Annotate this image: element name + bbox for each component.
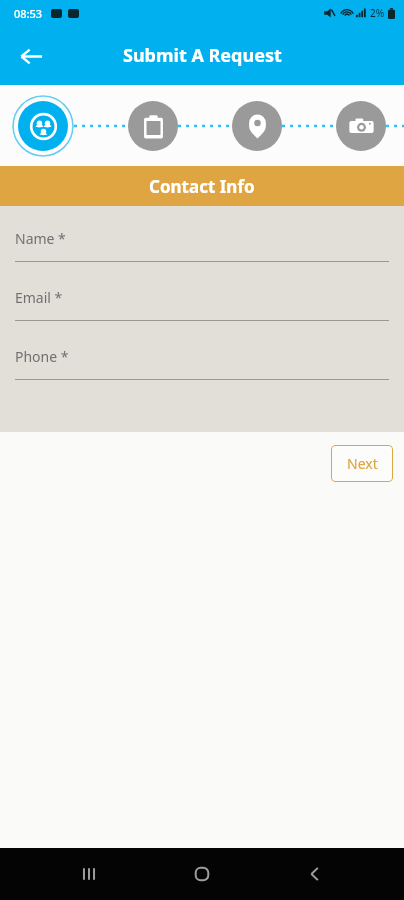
button[interactable]: Home <box>178 850 226 898</box>
staticText: Email * <box>15 288 63 307</box>
button[interactable]: Email * <box>0 288 404 321</box>
staticText: Next <box>347 454 378 473</box>
staticText: 2% <box>370 6 385 20</box>
button[interactable]: Name * <box>0 229 404 262</box>
staticText: Phone * <box>15 347 69 366</box>
button[interactable]: Back <box>10 35 52 77</box>
button[interactable]: Photo step <box>336 101 386 151</box>
staticText: 08:53 <box>14 6 43 21</box>
button[interactable]: Recent apps <box>65 850 113 898</box>
button[interactable]: Location step <box>232 101 282 151</box>
button[interactable]: Back <box>291 850 339 898</box>
button[interactable]: Contact info step <box>12 95 74 157</box>
button[interactable]: Next <box>331 445 393 482</box>
button[interactable]: Request details step <box>128 101 178 151</box>
staticText: Contact Info <box>149 175 255 198</box>
staticText: Name * <box>15 229 66 248</box>
button[interactable]: Phone * <box>0 347 404 380</box>
staticText: Submit A Request <box>123 43 282 68</box>
